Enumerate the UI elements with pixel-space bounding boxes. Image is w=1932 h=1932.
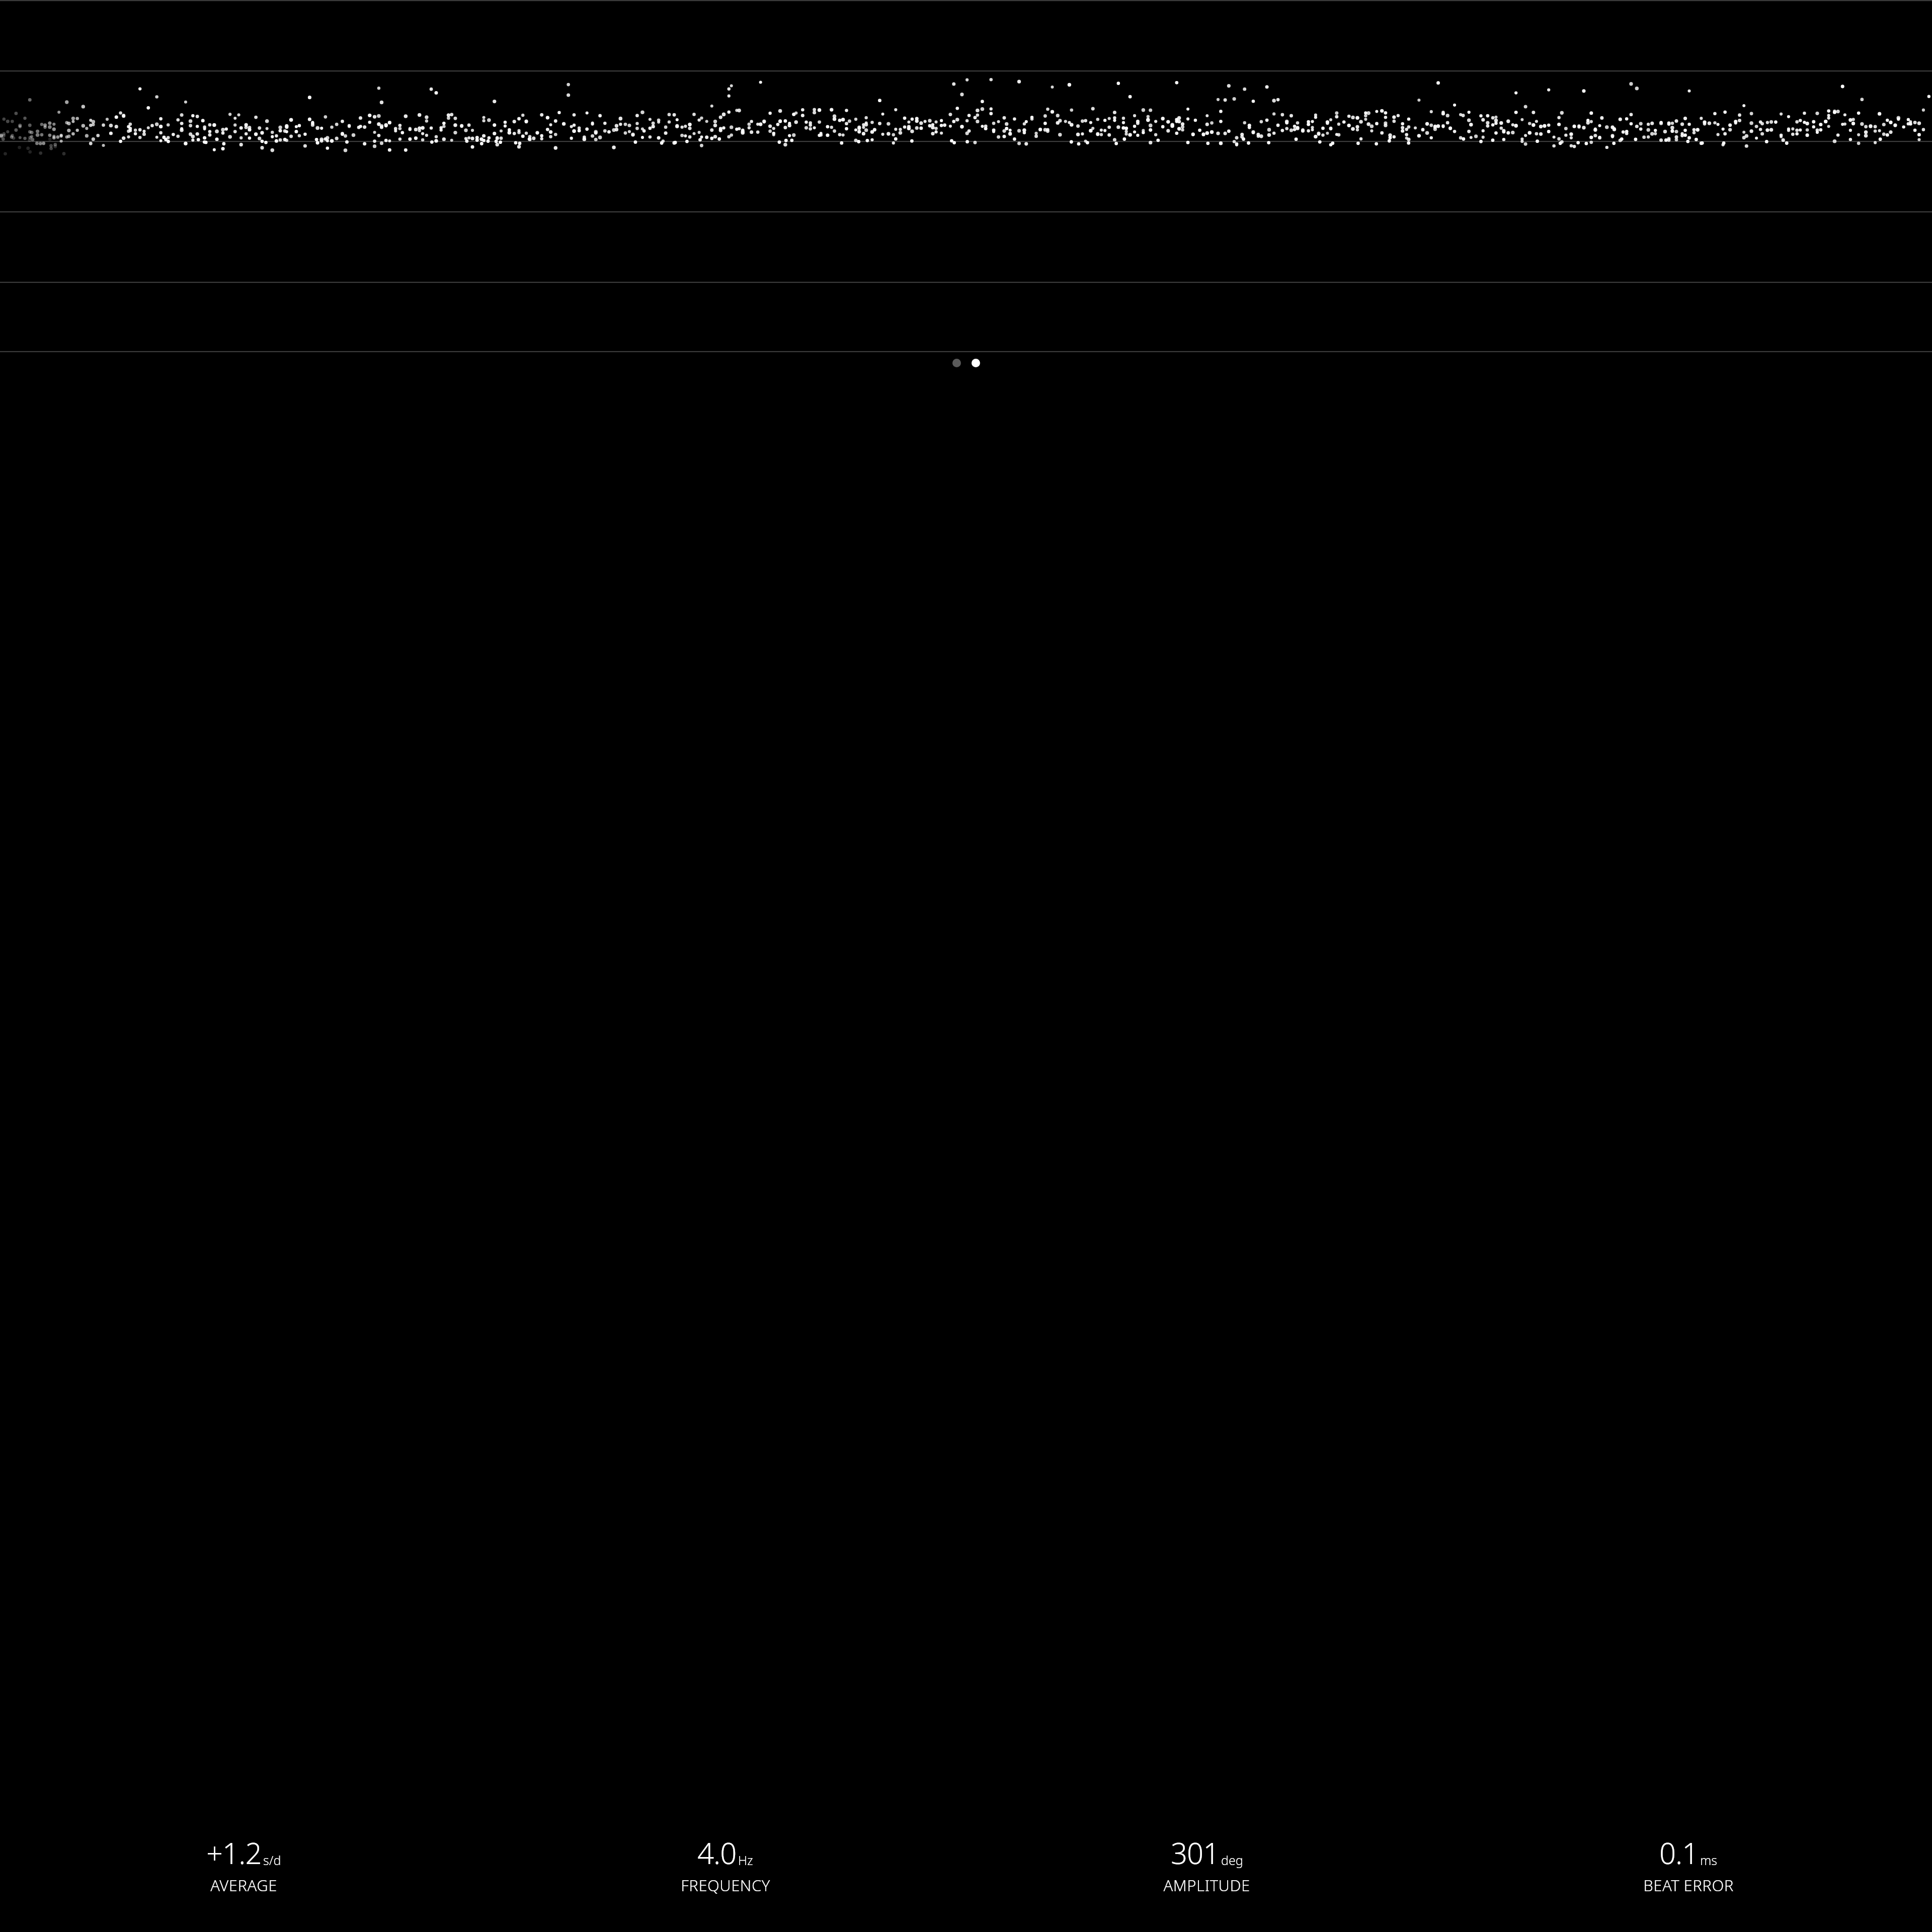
staticText: AMPLITUDE — [1163, 1875, 1250, 1896]
staticText: 0.1 — [1659, 1833, 1699, 1873]
staticText: 4.0 — [697, 1833, 737, 1873]
button[interactable]: 0.1 — [1447, 1833, 1929, 1896]
staticText: s/d — [263, 1852, 281, 1869]
staticText: Hz — [738, 1852, 753, 1869]
staticText: ms — [1700, 1852, 1718, 1869]
button[interactable]: +1.2 — [3, 1833, 485, 1896]
staticText: AVERAGE — [210, 1875, 277, 1896]
staticText: +1.2 — [206, 1833, 262, 1873]
staticText: deg — [1221, 1852, 1243, 1869]
button[interactable]: 4.0 — [485, 1833, 966, 1896]
staticText: BEAT ERROR — [1643, 1875, 1734, 1896]
staticText: 301 — [1171, 1833, 1220, 1873]
staticText: FREQUENCY — [681, 1875, 770, 1896]
button[interactable]: Page 2, selected — [972, 359, 980, 367]
button[interactable]: Page 1 — [952, 359, 961, 367]
button[interactable]: 301 — [966, 1833, 1447, 1896]
